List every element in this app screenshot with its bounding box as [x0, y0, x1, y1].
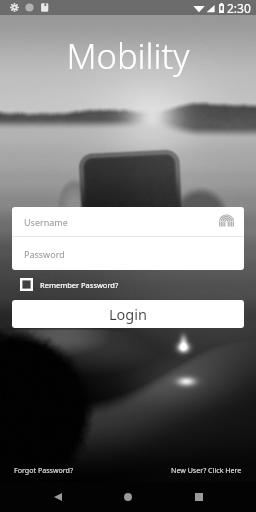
staticText: 2:30 [227, 0, 251, 15]
staticText: Username [24, 216, 68, 228]
button[interactable]: Login [12, 300, 244, 328]
button[interactable]: Forgot Password? [12, 465, 76, 475]
staticText: Remember Password? [40, 280, 119, 290]
button[interactable]: Password [12, 237, 244, 270]
staticText: Password [24, 248, 65, 260]
button[interactable]: New User? Click Here [169, 465, 244, 475]
staticText: Mobility [0, 32, 256, 79]
staticText: Login [109, 304, 147, 324]
button[interactable]: Home [112, 482, 144, 512]
button[interactable]: Recent apps [183, 482, 215, 512]
button[interactable]: Username [12, 207, 244, 236]
button[interactable]: Fingerprint login [219, 214, 234, 229]
button[interactable]: Remember Password? [20, 278, 119, 291]
button[interactable]: Back [41, 482, 74, 512]
